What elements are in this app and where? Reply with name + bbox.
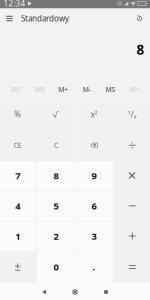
button[interactable]: 8 xyxy=(37,161,75,190)
button[interactable]: C xyxy=(37,130,75,160)
button[interactable]: Divide xyxy=(113,130,150,160)
button[interactable]: x² xyxy=(75,99,113,129)
button[interactable]: Menu xyxy=(3,8,15,28)
staticText: 12:34 xyxy=(3,0,25,9)
staticText: . xyxy=(93,261,96,273)
staticText: 9 xyxy=(92,169,97,182)
staticText: 7 xyxy=(15,169,20,182)
staticText: 2 xyxy=(53,230,58,242)
button[interactable]: MC xyxy=(4,83,28,95)
staticText: MR xyxy=(34,85,44,94)
button[interactable]: 5 xyxy=(37,191,75,221)
staticText: 8 xyxy=(53,169,58,182)
button[interactable]: 4 xyxy=(0,191,36,221)
button[interactable]: Square root xyxy=(37,99,75,129)
staticText: x² xyxy=(91,109,98,120)
button[interactable]: 3 xyxy=(75,221,113,251)
staticText: % xyxy=(14,109,21,120)
button[interactable]: 1 xyxy=(0,221,36,251)
staticText: M+ xyxy=(58,85,68,94)
button[interactable]: Home xyxy=(59,282,91,300)
button[interactable]: Backspace xyxy=(75,130,113,160)
button[interactable]: 9 xyxy=(75,161,113,190)
button[interactable]: 2 xyxy=(37,221,75,251)
staticText: 0 xyxy=(53,261,58,273)
staticText: 6 xyxy=(92,200,97,212)
staticText: C xyxy=(54,141,58,150)
button[interactable]: M xyxy=(122,83,146,95)
button[interactable]: ¹/ₓ xyxy=(113,99,150,129)
button[interactable]: . xyxy=(75,251,113,282)
staticText: CE xyxy=(14,141,22,150)
staticText: MS xyxy=(105,85,115,94)
staticText: Standardowy xyxy=(21,13,69,24)
button[interactable]: MR xyxy=(28,83,51,95)
button[interactable]: Plus xyxy=(113,221,150,251)
button[interactable]: History xyxy=(131,8,147,28)
button[interactable]: 6 xyxy=(75,191,113,221)
staticText: 1 xyxy=(15,230,20,242)
button[interactable]: MS xyxy=(99,83,122,95)
button[interactable]: 0 xyxy=(37,251,75,282)
button[interactable]: M+ xyxy=(51,83,75,95)
button[interactable]: Minus xyxy=(113,191,150,221)
staticText: 8 xyxy=(136,41,144,58)
button[interactable]: Plus minus xyxy=(0,251,36,282)
staticText: 5 xyxy=(53,200,58,212)
button[interactable]: M- xyxy=(75,83,99,95)
staticText: M- xyxy=(83,85,91,94)
staticText: 4 xyxy=(15,200,20,212)
button[interactable]: Multiply xyxy=(113,161,150,190)
staticText: MC xyxy=(11,85,21,94)
staticText: ¹/ₓ xyxy=(128,109,137,120)
staticText: M xyxy=(130,85,136,94)
button[interactable]: Equals xyxy=(113,251,150,282)
staticText: 3 xyxy=(92,230,97,242)
button[interactable]: Back xyxy=(29,282,59,300)
button[interactable]: Recents xyxy=(91,282,121,300)
button[interactable]: % xyxy=(0,99,36,129)
button[interactable]: CE xyxy=(0,130,36,160)
button[interactable]: 7 xyxy=(0,161,36,190)
